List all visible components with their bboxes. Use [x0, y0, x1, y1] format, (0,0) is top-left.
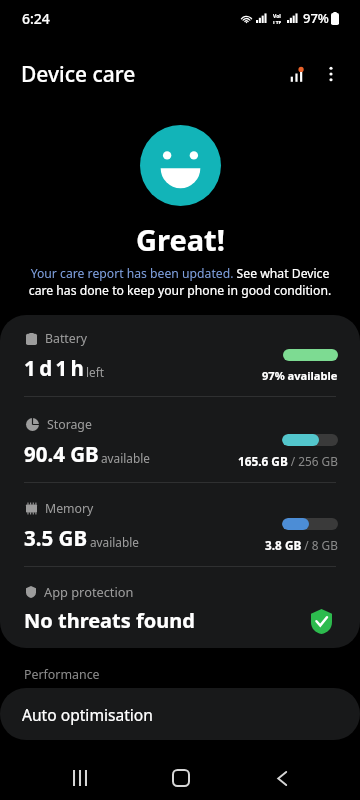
staticText: Battery	[45, 330, 88, 347]
staticText: left	[86, 364, 105, 380]
staticText: 6:24	[22, 9, 50, 28]
button[interactable]: Storage	[0, 397, 360, 482]
staticText: Storage	[47, 416, 92, 433]
button[interactable]: Auto optimisation	[0, 688, 360, 740]
staticText: 1 d 1 h	[24, 354, 84, 382]
staticText: Vol	[273, 13, 281, 20]
staticText: 97%	[303, 9, 329, 27]
staticText: 3.8 GB / 8 GB	[265, 537, 338, 553]
staticText: No threats found	[24, 607, 195, 634]
button[interactable]: Usage statistics	[280, 57, 314, 91]
staticText: 3.5 GB	[24, 524, 88, 552]
staticText: 97% available	[262, 368, 338, 383]
staticText: 165.6 GB / 256 GB	[238, 453, 338, 469]
staticText: 90.4 GB	[24, 440, 99, 468]
staticText: Your care report has been updated. See w…	[18, 265, 342, 299]
button[interactable]: Battery	[0, 315, 360, 396]
button[interactable]: App protection	[0, 567, 360, 648]
button[interactable]: Memory	[0, 483, 360, 566]
staticText: LTE	[273, 20, 282, 24]
button[interactable]: Home	[145, 756, 217, 800]
button[interactable]: More options	[314, 57, 348, 91]
button[interactable]: Back	[246, 756, 318, 800]
staticText: Auto optimisation	[22, 704, 153, 725]
staticText: Performance	[24, 666, 100, 683]
staticText: Great!	[136, 220, 225, 259]
staticText: Device care	[21, 60, 136, 89]
staticText: available	[90, 534, 139, 550]
staticText: Memory	[45, 500, 94, 517]
staticText: App protection	[44, 583, 134, 600]
button[interactable]: Recents	[44, 756, 116, 800]
staticText: available	[101, 450, 150, 466]
